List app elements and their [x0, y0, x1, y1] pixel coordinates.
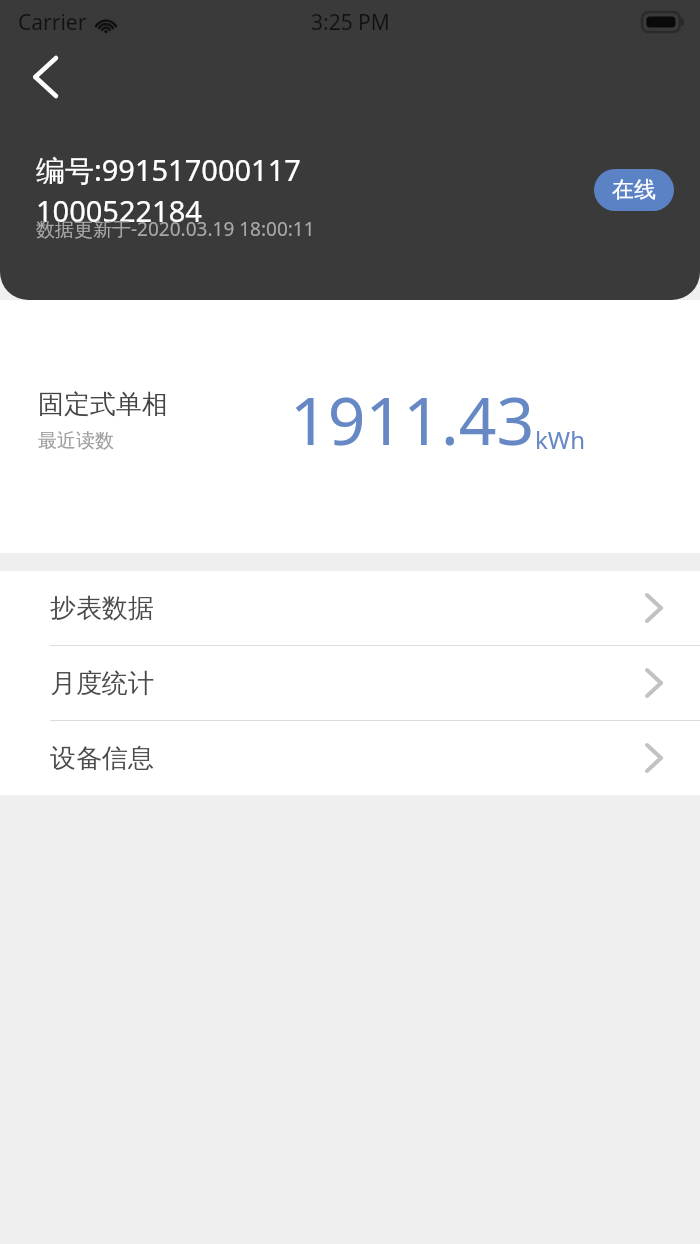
staticText: 设备信息	[50, 742, 154, 775]
staticText: 固定式单相	[38, 388, 168, 421]
button[interactable]: 在线	[594, 169, 674, 211]
staticText: 抄表数据	[50, 592, 154, 625]
staticText: Carrier	[18, 8, 87, 37]
staticText: 月度统计	[50, 667, 154, 700]
button[interactable]: Back	[14, 46, 76, 108]
staticText: 在线	[612, 176, 656, 204]
staticText: 编号:9915170001171000522184	[36, 150, 315, 230]
staticText: 数据更新于-2020.03.19 18:00:11	[36, 216, 315, 242]
staticText: 1911.43	[290, 374, 535, 464]
button[interactable]: 月度统计	[0, 646, 700, 720]
button[interactable]: 设备信息	[0, 721, 700, 795]
staticText: kWh	[535, 423, 585, 456]
staticText: 最近读数	[38, 429, 114, 453]
staticText: 3:25 PM	[311, 8, 390, 37]
button[interactable]: 抄表数据	[0, 571, 700, 645]
